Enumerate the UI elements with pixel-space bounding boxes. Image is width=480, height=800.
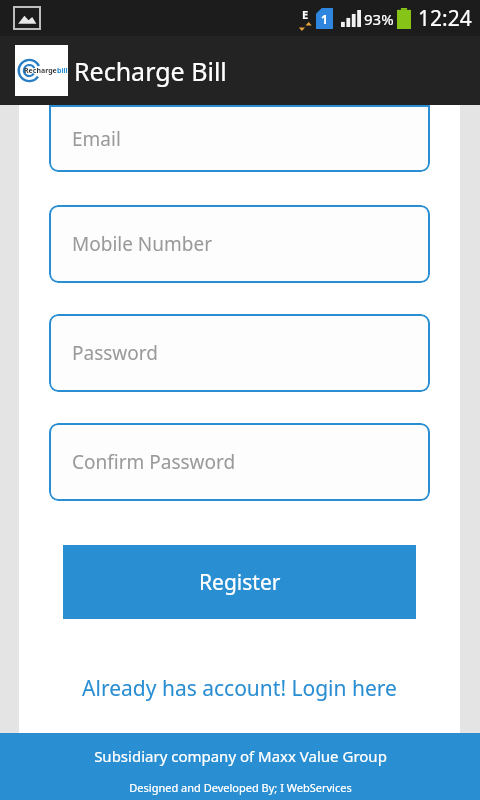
staticText: 1: [321, 11, 328, 27]
staticText: Designed and Developed By; I WebServices: [129, 780, 352, 795]
staticText: Recharge Bill: [74, 54, 227, 88]
staticText: Recharge: [24, 66, 57, 76]
button[interactable]: Confirm Password: [49, 423, 430, 501]
staticText: bill: [57, 66, 68, 76]
button[interactable]: Already has account! Login here: [49, 667, 430, 709]
staticText: E: [302, 7, 309, 22]
staticText: 93%: [364, 9, 394, 29]
button[interactable]: Register: [63, 545, 416, 619]
button[interactable]: Mobile Number: [49, 205, 430, 283]
button[interactable]: Email: [49, 105, 430, 172]
staticText: Subsidiary company of Maxx Value Group: [94, 746, 387, 766]
button[interactable]: Password: [49, 314, 430, 392]
staticText: Already has account! Login here: [82, 674, 397, 703]
other: Image notification: [14, 7, 40, 29]
staticText: Mobile Number: [72, 231, 213, 257]
staticText: Email: [72, 126, 121, 152]
staticText: 12:24: [418, 4, 472, 33]
staticText: Confirm Password: [72, 449, 236, 475]
staticText: Password: [72, 340, 158, 366]
staticText: Register: [199, 568, 281, 597]
